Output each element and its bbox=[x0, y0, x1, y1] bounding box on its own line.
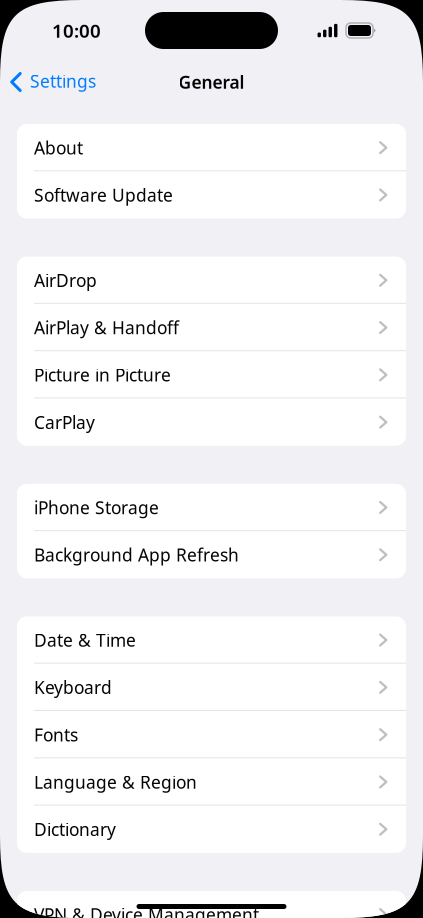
staticText: AirPlay & Handoff bbox=[34, 316, 179, 339]
button[interactable]: Settings bbox=[0, 62, 96, 101]
button[interactable]: Dictionary bbox=[17, 806, 406, 853]
button[interactable]: Fonts bbox=[17, 711, 406, 758]
button[interactable]: AirPlay & Handoff bbox=[17, 304, 406, 351]
button[interactable]: iPhone Storage bbox=[17, 484, 406, 531]
staticText: Keyboard bbox=[34, 676, 112, 699]
staticText: Software Update bbox=[34, 183, 173, 206]
button[interactable]: Picture in Picture bbox=[17, 351, 406, 398]
button[interactable]: Date & Time bbox=[17, 616, 406, 664]
staticText: CarPlay bbox=[34, 411, 95, 434]
staticText: Fonts bbox=[34, 723, 78, 746]
staticText: VPN & Device Management bbox=[34, 903, 259, 918]
button[interactable]: Software Update bbox=[17, 171, 406, 219]
button[interactable]: AirDrop bbox=[17, 257, 406, 304]
staticText: Dictionary bbox=[34, 818, 116, 841]
button[interactable]: About bbox=[17, 124, 406, 171]
staticText: Language & Region bbox=[34, 770, 197, 793]
staticText: About bbox=[34, 136, 83, 159]
staticText: 10:00 bbox=[52, 18, 101, 43]
staticText: Picture in Picture bbox=[34, 363, 171, 386]
staticText: General bbox=[178, 70, 244, 93]
button[interactable]: CarPlay bbox=[17, 398, 406, 446]
staticText: iPhone Storage bbox=[34, 496, 159, 519]
staticText: Date & Time bbox=[34, 628, 136, 651]
staticText: Settings bbox=[30, 69, 96, 92]
button[interactable]: VPN & Device Management bbox=[17, 891, 406, 918]
button[interactable]: Language & Region bbox=[17, 758, 406, 806]
button[interactable]: Background App Refresh bbox=[17, 531, 406, 578]
staticText: Background App Refresh bbox=[34, 543, 239, 566]
staticText: AirDrop bbox=[34, 269, 97, 292]
button[interactable]: Keyboard bbox=[17, 664, 406, 711]
